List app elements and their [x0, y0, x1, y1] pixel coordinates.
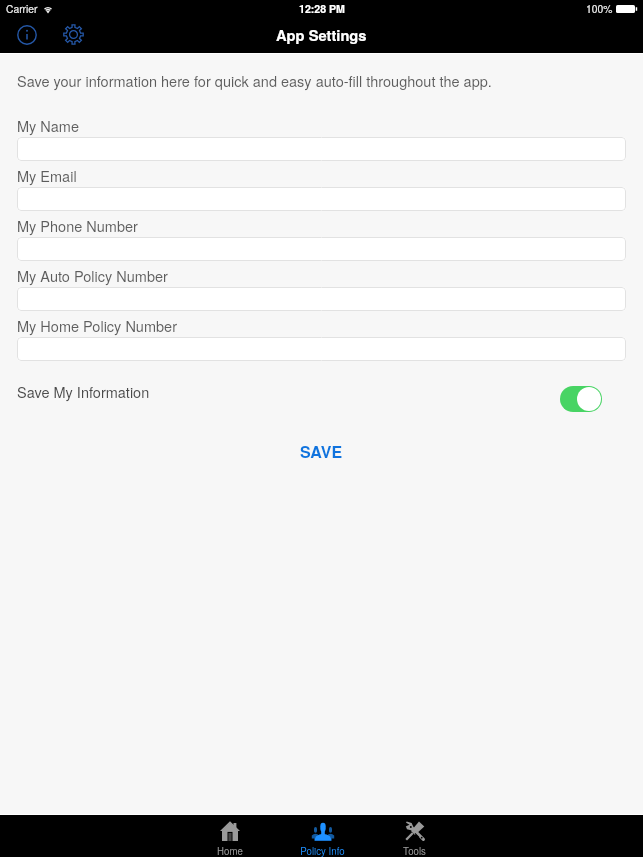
button[interactable]: Tools	[368, 815, 460, 857]
staticText: Save My Information	[17, 381, 150, 402]
staticText: My Auto Policy Number	[17, 265, 168, 286]
staticText: My Phone Number	[17, 215, 138, 236]
staticText: My Home Policy Number	[17, 315, 177, 336]
staticText: App Settings	[276, 24, 367, 45]
button[interactable]: Save My Information	[560, 386, 602, 412]
staticText: Save your information here for quick and…	[17, 70, 492, 91]
staticText: 100%	[586, 1, 613, 16]
button[interactable]: Settings	[60, 21, 87, 48]
staticText: My Name	[17, 115, 79, 136]
button[interactable]: Information	[13, 21, 40, 48]
staticText: SAVE	[300, 440, 343, 463]
staticText: Carrier	[6, 1, 38, 16]
staticText: Tools	[403, 844, 426, 857]
staticText: Policy Info	[300, 844, 345, 857]
staticText: 12:28 PM	[299, 1, 345, 16]
staticText: My Email	[17, 165, 77, 186]
button[interactable]: My Auto Policy Number	[17, 287, 626, 311]
staticText: Home	[217, 844, 243, 857]
button[interactable]: Home	[184, 815, 276, 857]
button[interactable]: My Name	[17, 137, 626, 161]
button[interactable]: Policy Info	[276, 815, 368, 857]
button[interactable]: My Home Policy Number	[17, 337, 626, 361]
button[interactable]: My Phone Number	[17, 237, 626, 261]
button[interactable]: My Email	[17, 187, 626, 211]
button[interactable]: SAVE	[276, 434, 367, 469]
